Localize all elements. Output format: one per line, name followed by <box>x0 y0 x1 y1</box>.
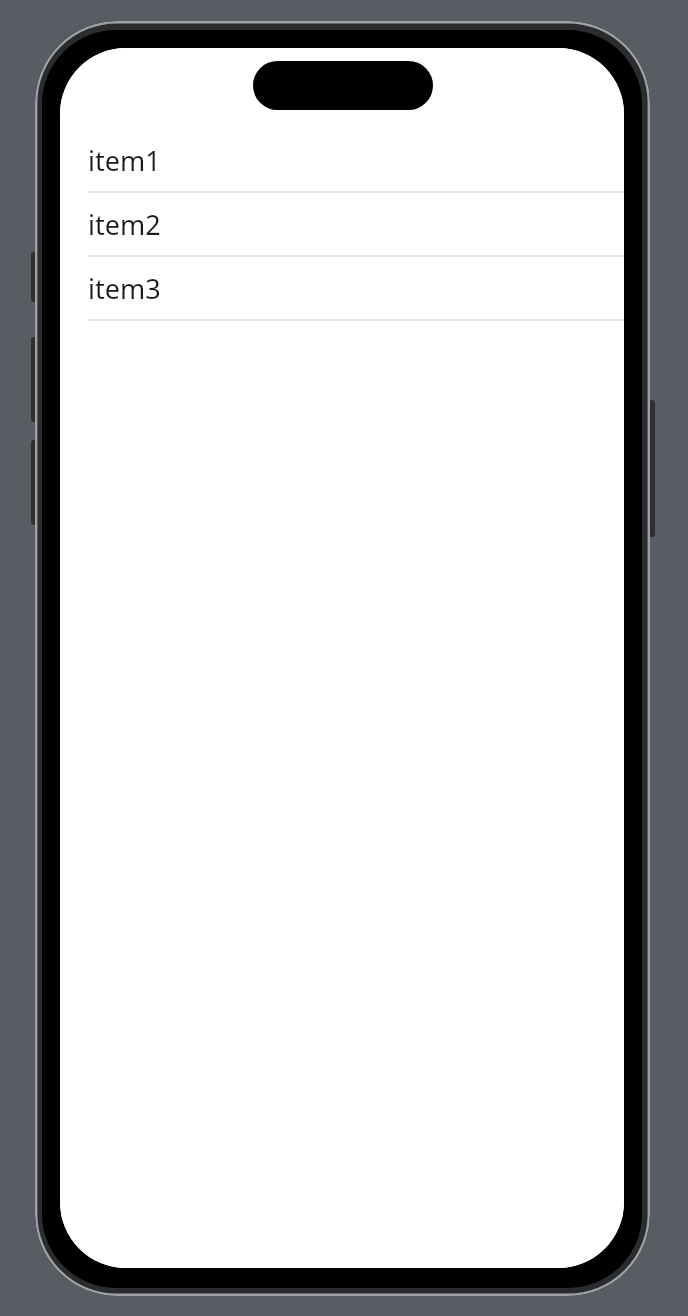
staticText: item2 <box>88 206 161 243</box>
button[interactable]: item1 <box>60 129 624 193</box>
button[interactable]: item3 <box>60 257 624 321</box>
staticText: item1 <box>88 142 161 179</box>
button[interactable]: item2 <box>60 193 624 257</box>
staticText: item3 <box>88 270 161 307</box>
